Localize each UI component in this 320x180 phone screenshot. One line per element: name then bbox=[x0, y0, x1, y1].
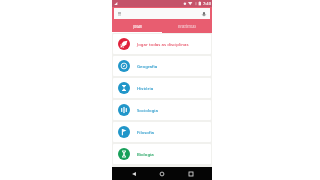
button[interactable]: Sociologia bbox=[113, 100, 211, 120]
staticText: Filosofia bbox=[137, 129, 155, 135]
staticText: Biologia bbox=[137, 151, 154, 157]
button[interactable]: Home bbox=[157, 169, 167, 179]
button[interactable]: Back bbox=[129, 169, 139, 179]
staticText: ESTATÍSTICAS bbox=[178, 25, 196, 29]
staticText: Jogar todas as disciplinas bbox=[137, 41, 189, 47]
staticText: JOGAR bbox=[133, 25, 142, 29]
button[interactable]: Geografia bbox=[113, 56, 211, 76]
button[interactable]: JOGAR bbox=[112, 20, 162, 33]
button[interactable]: Menu bbox=[114, 8, 210, 19]
staticText: Geografia bbox=[137, 63, 158, 69]
button[interactable]: Recent apps bbox=[186, 169, 196, 179]
button[interactable]: Filosofia bbox=[113, 122, 211, 142]
button[interactable]: Jogar todas as disciplinas bbox=[113, 34, 211, 54]
button[interactable]: Biologia bbox=[113, 144, 211, 164]
button[interactable]: História bbox=[113, 78, 211, 98]
staticText: 7:40 bbox=[203, 1, 211, 6]
staticText: História bbox=[137, 85, 154, 91]
other: Voice search bbox=[201, 11, 207, 17]
button[interactable]: ESTATÍSTICAS bbox=[162, 20, 212, 33]
other: Menu bbox=[118, 12, 121, 15]
staticText: Sociologia bbox=[137, 107, 158, 113]
